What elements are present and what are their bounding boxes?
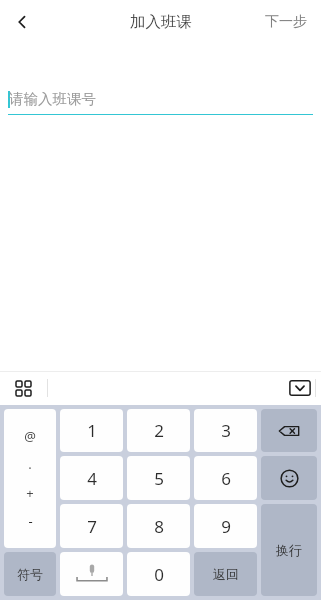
staticText: 2 xyxy=(154,419,164,442)
staticText: 7 xyxy=(87,515,97,538)
button[interactable]: 返回 xyxy=(194,552,257,596)
staticText: 加入班课 xyxy=(130,12,192,32)
button[interactable]: 0 xyxy=(127,552,190,596)
button[interactable]: 符号 xyxy=(4,552,56,596)
staticText: - xyxy=(28,512,33,530)
button[interactable]: Backspace xyxy=(261,409,317,452)
button[interactable]: Hide keyboard xyxy=(285,373,315,403)
button[interactable]: 换行 xyxy=(261,504,317,596)
button[interactable]: 6 xyxy=(194,456,257,500)
button[interactable]: 3 xyxy=(194,409,257,452)
button[interactable]: 4 xyxy=(60,456,123,500)
button[interactable]: 下一步 xyxy=(251,3,321,41)
staticText: 请输入班课号 xyxy=(9,90,96,108)
staticText: 符号 xyxy=(17,566,43,582)
button[interactable]: Emoji xyxy=(261,456,317,500)
button[interactable]: 5 xyxy=(127,456,190,500)
button[interactable]: 7 xyxy=(60,504,123,548)
staticText: 返回 xyxy=(213,566,239,582)
staticText: 0 xyxy=(154,563,164,586)
staticText: 3 xyxy=(221,419,231,442)
button[interactable]: 2 xyxy=(127,409,190,452)
staticText: 5 xyxy=(154,467,164,490)
staticText: 6 xyxy=(221,467,231,490)
button[interactable]: Keyboard modes xyxy=(8,373,38,403)
button[interactable]: Back xyxy=(0,0,44,44)
staticText: 9 xyxy=(221,515,231,538)
staticText: 1 xyxy=(87,419,97,442)
staticText: 8 xyxy=(154,515,164,538)
button[interactable]: 8 xyxy=(127,504,190,548)
staticText: 换行 xyxy=(276,542,302,558)
button[interactable]: Space xyxy=(60,552,123,596)
staticText: @ xyxy=(24,427,36,445)
button[interactable]: 1 xyxy=(60,409,123,452)
button[interactable]: 9 xyxy=(194,504,257,548)
staticText: . xyxy=(28,455,32,473)
staticText: 下一步 xyxy=(265,13,307,31)
staticText: + xyxy=(26,484,34,502)
staticText: 4 xyxy=(87,467,97,490)
button[interactable]: @ xyxy=(4,409,56,548)
